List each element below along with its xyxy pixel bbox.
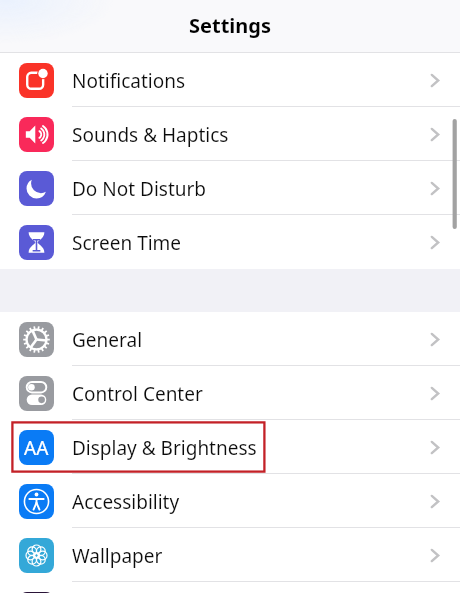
staticText: Screen Time [72,230,182,256]
button[interactable]: Sounds & Haptics [0,107,460,161]
button[interactable]: Do Not Disturb [0,161,460,215]
button[interactable]: General [0,312,460,366]
staticText: Sounds & Haptics [72,122,229,148]
staticText: Display & Brightness [72,435,257,461]
staticText: Accessibility [72,489,180,515]
button[interactable]: Notifications [0,53,460,107]
button[interactable]: AA [0,420,460,474]
staticText: Wallpaper [72,543,163,569]
staticText: Control Center [72,381,203,407]
staticText: Settings [189,12,271,39]
staticText: Notifications [72,68,186,94]
button[interactable]: Screen Time [0,215,460,269]
button[interactable]: Siri & Search [0,582,460,593]
button[interactable]: Control Center [0,366,460,420]
button[interactable]: Wallpaper [0,528,460,582]
staticText: General [72,327,143,353]
button[interactable]: Accessibility [0,474,460,528]
staticText: Do Not Disturb [72,176,207,202]
staticText: AA [24,435,49,461]
